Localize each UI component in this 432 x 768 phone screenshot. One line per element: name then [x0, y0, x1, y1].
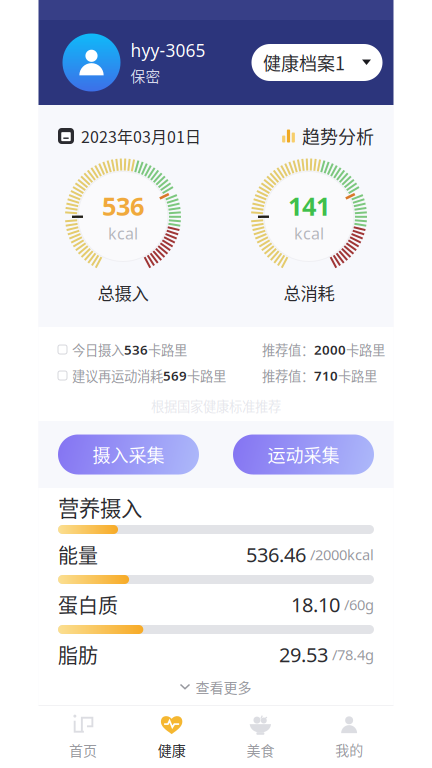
staticText: 今日摄入 — [72, 340, 124, 359]
staticText: 健康档案1 — [263, 49, 345, 76]
staticText: 536.46 — [246, 541, 306, 568]
button[interactable]: 美食 — [216, 706, 305, 768]
staticText: 710 — [314, 367, 338, 384]
staticText: 趋势分析 — [302, 123, 374, 149]
staticText: 蛋白质 — [58, 590, 118, 619]
staticText: 美食 — [246, 740, 274, 760]
staticText: 536 — [102, 189, 144, 223]
staticText: 我的 — [335, 739, 363, 759]
staticText: 卡路里 — [148, 340, 187, 359]
staticText: 18.10 — [291, 591, 340, 618]
staticText: 首页 — [69, 740, 97, 760]
staticText: 卡路里 — [338, 366, 377, 385]
staticText: 健康 — [158, 740, 186, 760]
staticText: 查看更多 — [195, 677, 251, 697]
staticText: 536 — [124, 341, 148, 358]
staticText: 推荐值： — [262, 366, 314, 385]
button[interactable]: 首页 — [38, 706, 127, 768]
staticText: kcal — [108, 223, 138, 244]
staticText: /2000kcal — [306, 545, 374, 564]
staticText: 2023年03月01日 — [81, 124, 201, 148]
button[interactable]: 查看更多 — [58, 675, 374, 699]
staticText: 141 — [288, 189, 330, 223]
staticText: 保密 — [130, 65, 160, 86]
staticText: 卡路里 — [187, 366, 226, 385]
button[interactable]: 健康 — [127, 706, 216, 768]
staticText: 建议再运动消耗 — [72, 366, 163, 385]
button[interactable]: 我的 — [305, 706, 394, 768]
staticText: 29.53 — [279, 641, 328, 668]
staticText: 卡路里 — [346, 340, 385, 359]
staticText: /60g — [340, 595, 374, 614]
staticText: 根据国家健康标准推荐 — [151, 396, 281, 415]
button[interactable]: 运动采集 — [233, 434, 374, 474]
staticText: 脂肪 — [58, 640, 98, 669]
staticText: 运动采集 — [267, 441, 339, 468]
staticText: 能量 — [58, 540, 98, 569]
staticText: 569 — [163, 367, 187, 384]
button[interactable]: 摄入采集 — [58, 434, 199, 474]
button[interactable]: 健康档案1 — [251, 44, 382, 81]
staticText: /78.4g — [328, 645, 374, 664]
staticText: hyy-3065 — [130, 39, 205, 62]
staticText: 总摄入 — [97, 280, 148, 305]
staticText: 2000 — [314, 341, 346, 358]
staticText: 营养摄入 — [58, 492, 142, 522]
staticText: 推荐值： — [262, 340, 314, 359]
staticText: kcal — [294, 223, 324, 244]
staticText: 摄入采集 — [92, 441, 164, 468]
staticText: 总消耗 — [283, 280, 334, 305]
